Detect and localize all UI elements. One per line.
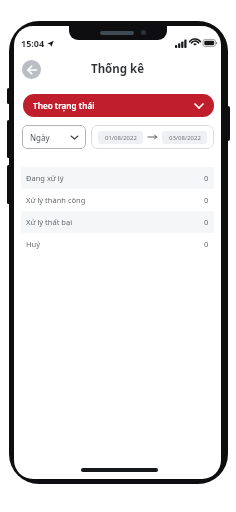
staticText: Xử lý thành công bbox=[26, 195, 86, 205]
staticText: 0 bbox=[204, 195, 209, 205]
staticText: Ngày bbox=[30, 132, 50, 143]
staticText: 03/08/2022 bbox=[169, 134, 201, 142]
button[interactable]: Xử lý thất bại bbox=[21, 211, 214, 233]
staticText: Thống kê bbox=[91, 61, 145, 77]
staticText: Theo trạng thái bbox=[33, 100, 95, 111]
staticText: 0 bbox=[204, 217, 209, 227]
staticText: Đang xử lý bbox=[26, 173, 64, 183]
button[interactable]: 01/08/2022 bbox=[98, 131, 143, 144]
button[interactable]: Theo trạng thái bbox=[23, 94, 214, 117]
staticText: 15:04 bbox=[21, 37, 45, 49]
staticText: 01/08/2022 bbox=[105, 134, 137, 142]
button[interactable]: Xử lý thành công bbox=[21, 189, 214, 211]
button[interactable]: Huỷ bbox=[21, 233, 214, 255]
staticText: Huỷ bbox=[26, 239, 41, 249]
button[interactable]: Đang xử lý bbox=[21, 167, 214, 189]
button[interactable]: 03/08/2022 bbox=[162, 131, 207, 144]
button[interactable] bbox=[22, 60, 41, 79]
staticText: 0 bbox=[204, 239, 209, 249]
button[interactable]: Ngày bbox=[22, 125, 86, 149]
staticText: 0 bbox=[204, 173, 209, 183]
staticText: Xử lý thất bại bbox=[26, 217, 73, 227]
